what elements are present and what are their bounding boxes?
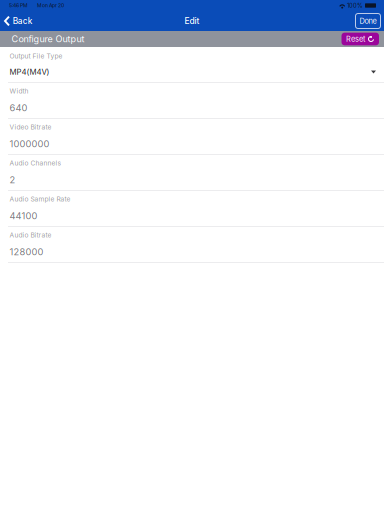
staticText: Video Bitrate bbox=[9, 123, 51, 131]
staticText: 5:46 PM bbox=[9, 2, 28, 8]
staticText: Back bbox=[13, 16, 33, 26]
staticText: 640 bbox=[9, 102, 27, 113]
staticText: Audio Bitrate bbox=[9, 231, 51, 239]
button[interactable]: Reset bbox=[341, 33, 379, 45]
button[interactable]: Done bbox=[355, 13, 380, 28]
staticText: 1000000 bbox=[9, 138, 49, 149]
staticText: Done bbox=[359, 16, 376, 25]
staticText: Audio Channels bbox=[9, 159, 61, 167]
button[interactable]: Back bbox=[0, 13, 39, 29]
staticText: Mon Apr 20 bbox=[37, 2, 64, 8]
staticText: Configure Output bbox=[11, 33, 84, 44]
staticText: Audio Sample Rate bbox=[9, 195, 70, 203]
staticText: MP4(M4V) bbox=[9, 67, 49, 76]
staticText: 128000 bbox=[9, 246, 43, 257]
staticText: Edit bbox=[184, 16, 199, 26]
staticText: Reset bbox=[346, 34, 365, 43]
staticText: 100% bbox=[347, 2, 363, 9]
staticText: 2 bbox=[9, 174, 15, 185]
staticText: 44100 bbox=[9, 210, 37, 221]
staticText: Output File Type bbox=[9, 52, 62, 60]
staticText: Width bbox=[9, 87, 28, 95]
